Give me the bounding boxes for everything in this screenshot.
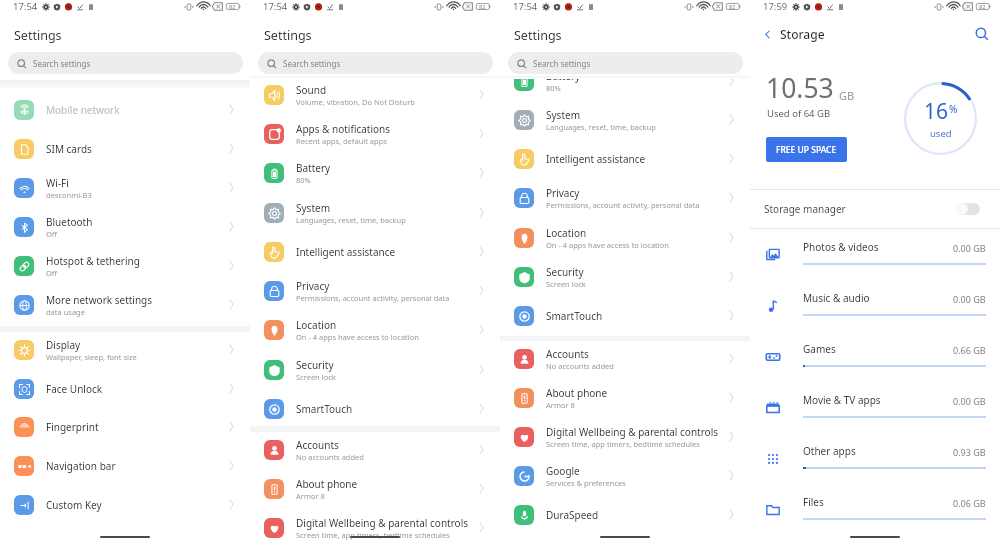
staticText: Music & audio [803, 291, 870, 305]
button[interactable]: Privacy [500, 178, 750, 217]
button[interactable]: SmartTouch [500, 296, 750, 335]
staticText: Used of 64 GB [767, 107, 831, 120]
button[interactable]: Movie & TV apps [750, 382, 1000, 433]
staticText: Armor 8 [296, 491, 325, 501]
staticText: Hotspot & tethering [46, 254, 140, 268]
staticText: 0.06 GB [953, 497, 986, 509]
staticText: SmartTouch [296, 402, 353, 416]
staticText: Privacy [546, 186, 580, 200]
button[interactable]: Music & audio [750, 280, 1000, 331]
button[interactable]: Sound [250, 75, 500, 114]
staticText: SmartTouch [546, 309, 603, 323]
button[interactable]: System [500, 100, 750, 139]
button[interactable]: Photos & videos [750, 229, 1000, 280]
staticText: Google [546, 464, 580, 478]
staticText: GB [839, 88, 855, 103]
button[interactable]: Other apps [750, 433, 1000, 484]
staticText: More network settings [46, 293, 153, 307]
staticText: Volume, vibration, Do Not Disturb [296, 97, 415, 107]
button[interactable]: Intelligent assistance [500, 139, 750, 178]
staticText: Recent apps, default apps [296, 136, 387, 146]
staticText: 17:54 [513, 0, 538, 13]
staticText: desconmi-B3 [46, 190, 92, 200]
button[interactable]: Intelligent assistance [250, 232, 500, 271]
button[interactable]: Digital Wellbeing & parental controls [250, 508, 500, 542]
staticText: used [930, 127, 952, 140]
button[interactable]: SmartTouch [250, 389, 500, 428]
staticText: Permissions, account activity, personal … [296, 293, 450, 303]
button[interactable]: Location [500, 218, 750, 257]
button[interactable]: Search [972, 24, 992, 44]
button[interactable]: Battery [250, 153, 500, 192]
button[interactable]: Files [750, 484, 1000, 535]
staticText: Settings [264, 27, 312, 44]
staticText: Wallpaper, sleep, font size [46, 352, 137, 362]
staticText: On - 4 apps have access to location [546, 240, 669, 250]
staticText: FREE UP SPACE [776, 144, 837, 156]
button[interactable]: Battery [500, 73, 750, 100]
button[interactable]: Navigation bar [0, 446, 250, 485]
staticText: data usage [46, 307, 85, 317]
staticText: 80% [546, 83, 561, 93]
staticText: Security [296, 358, 334, 372]
button[interactable]: System [250, 193, 500, 232]
button[interactable]: Fingerprint [0, 407, 250, 446]
button[interactable]: Search settings [258, 52, 493, 74]
staticText: Accounts [296, 438, 339, 452]
staticText: Intelligent assistance [296, 245, 396, 259]
staticText: Settings [514, 27, 562, 44]
staticText: 82 [979, 3, 986, 10]
staticText: 82 [229, 3, 236, 10]
staticText: 10.53 [766, 70, 834, 106]
staticText: Mobile network [46, 103, 120, 117]
staticText: DuraSpeed [546, 508, 599, 522]
button[interactable]: Digital Wellbeing & parental controls [500, 417, 750, 456]
button[interactable]: Back [758, 25, 776, 43]
button[interactable]: Accounts [500, 339, 750, 378]
button[interactable]: Security [250, 350, 500, 389]
staticText: SIM cards [46, 142, 92, 156]
button[interactable]: Apps & notifications [250, 114, 500, 153]
button[interactable]: About phone [500, 378, 750, 417]
button[interactable]: Wi-Fi [0, 168, 250, 207]
button[interactable]: Mobile network [0, 90, 250, 129]
button[interactable]: About phone [250, 469, 500, 508]
button[interactable]: Storage manager [750, 190, 1000, 228]
button[interactable]: Face Unlock [0, 369, 250, 408]
button[interactable]: Security [500, 257, 750, 296]
button[interactable]: Hotspot & tethering [0, 246, 250, 285]
staticText: Services & preferences [546, 478, 626, 488]
staticText: About phone [296, 477, 358, 491]
staticText: Battery [546, 73, 581, 83]
button[interactable]: Google [500, 456, 750, 495]
staticText: Files [803, 495, 824, 509]
button[interactable]: Privacy [250, 271, 500, 310]
button[interactable]: FREE UP SPACE [766, 137, 847, 162]
staticText: 80% [296, 175, 311, 185]
button[interactable]: DuraSpeed [500, 495, 750, 534]
staticText: Display [46, 338, 81, 352]
staticText: Search settings [533, 58, 591, 69]
staticText: Digital Wellbeing & parental controls [546, 425, 719, 439]
button[interactable]: Search settings [508, 52, 743, 74]
staticText: System [296, 201, 330, 215]
staticText: On - 4 apps have access to location [296, 332, 419, 342]
button[interactable]: Custom Key [0, 485, 250, 524]
button[interactable]: Games [750, 331, 1000, 382]
staticText: Movie & TV apps [803, 393, 881, 407]
button[interactable]: More network settings [0, 285, 250, 324]
button[interactable]: SIM cards [0, 129, 250, 168]
button[interactable]: Display [0, 330, 250, 369]
staticText: 17:54 [263, 0, 288, 13]
button[interactable]: Accounts [250, 430, 500, 469]
staticText: % [949, 102, 958, 116]
staticText: System [546, 108, 580, 122]
staticText: Custom Key [46, 498, 102, 512]
staticText: Location [296, 318, 337, 332]
button[interactable]: Bluetooth [0, 207, 250, 246]
staticText: 0.00 GB [953, 242, 986, 254]
button[interactable]: Search settings [8, 52, 243, 74]
staticText: Search settings [283, 58, 341, 69]
button[interactable]: Location [250, 310, 500, 349]
staticText: No accounts added [296, 452, 364, 462]
